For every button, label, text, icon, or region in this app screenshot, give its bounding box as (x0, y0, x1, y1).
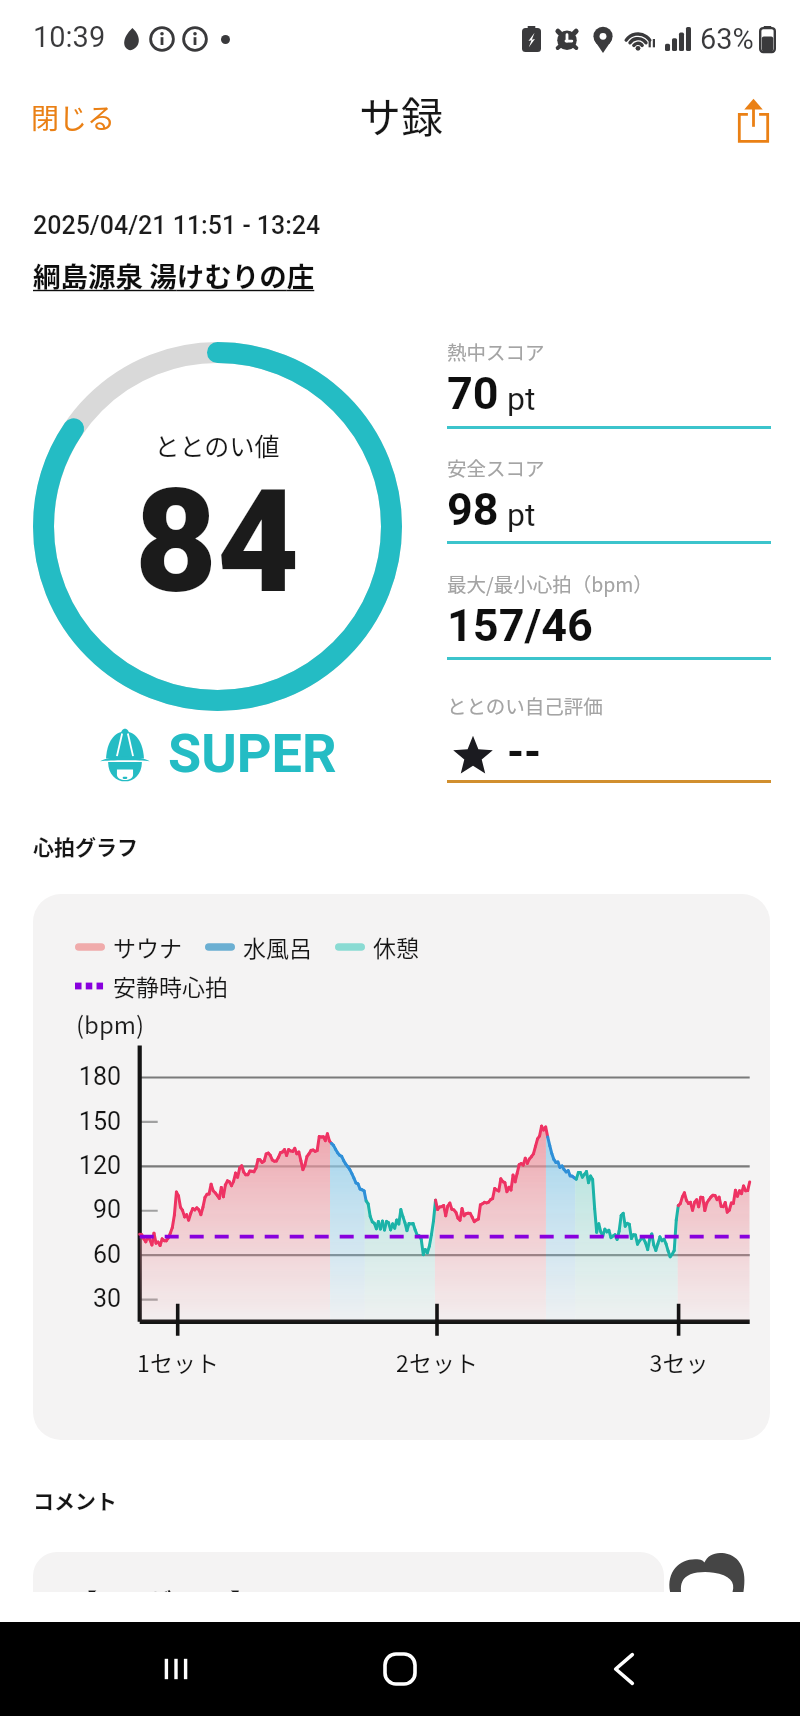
staticText: 60 (45, 1240, 121, 1269)
button[interactable]: サウナ (33, 894, 770, 1440)
button[interactable]: Back (576, 1622, 672, 1716)
staticText: pt (499, 496, 536, 534)
staticText: 【ここが3つ!!】 (72, 1583, 256, 1592)
staticText: 1セット (118, 1345, 238, 1378)
button[interactable]: 最大/最小心拍（bpm） (447, 569, 771, 661)
staticText: 90 (45, 1195, 121, 1224)
button[interactable]: 熱中スコア (447, 337, 771, 430)
button[interactable]: 綱島源泉 湯けむりの庄 (33, 255, 315, 295)
staticText: 心拍グラフ (33, 831, 138, 861)
staticText: 63% (700, 22, 754, 56)
staticText: 休憩 (373, 930, 419, 963)
staticText: (bpm) (76, 1006, 145, 1041)
staticText: 180 (45, 1062, 121, 1091)
staticText: 157/46 (447, 599, 593, 652)
staticText: 2025/04/21 11:51 - 13:24 (33, 211, 321, 240)
staticText: 安全スコア (447, 453, 545, 481)
staticText: SUPER (168, 722, 337, 785)
button[interactable]: 安全スコア (447, 453, 771, 545)
staticText: 安静時心拍 (113, 969, 228, 1002)
staticText: ととのい自己評価 (447, 691, 603, 719)
staticText: 3セッ (619, 1345, 739, 1378)
staticText: pt (499, 380, 536, 418)
staticText: 水風呂 (243, 930, 312, 963)
staticText: 120 (45, 1151, 121, 1180)
staticText: 10:39 (33, 20, 106, 54)
button[interactable]: Share (723, 84, 784, 157)
staticText: 閉じる (31, 97, 116, 138)
staticText: 30 (45, 1284, 121, 1313)
staticText: ととのい値 (0, 427, 434, 463)
staticText: 98 (447, 483, 499, 536)
staticText: 70 (447, 367, 499, 420)
staticText: 84 (0, 459, 434, 625)
staticText: 2セット (377, 1345, 497, 1378)
staticText: コメント (33, 1485, 117, 1515)
button[interactable]: Home (352, 1622, 448, 1716)
button[interactable]: Recent apps (128, 1622, 224, 1716)
staticText: サ録 (359, 84, 444, 145)
staticText: 150 (45, 1107, 121, 1136)
staticText: 最大/最小心拍（bpm） (447, 569, 653, 597)
staticText: 綱島源泉 湯けむりの庄 (33, 255, 315, 295)
button[interactable]: 閉じる (7, 88, 140, 153)
button[interactable]: 【ここが3つ!!】 (33, 1552, 664, 1592)
staticText: サウナ (113, 930, 182, 963)
button[interactable]: ととのい自己評価 (447, 691, 771, 785)
staticText: -- (507, 726, 542, 778)
staticText: 熱中スコア (447, 337, 545, 365)
